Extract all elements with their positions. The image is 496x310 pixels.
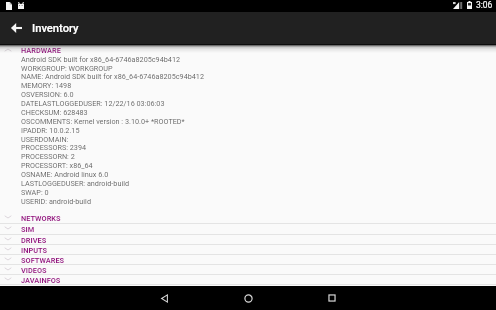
button[interactable]: Recents (290, 286, 374, 310)
button[interactable]: SOFTWARES (0, 255, 496, 265)
button[interactable]: VIDEOS (0, 265, 496, 275)
staticText: OSNAME: Android linux 6.0 (21, 170, 109, 178)
button[interactable]: SIM (0, 224, 496, 235)
button[interactable]: JAVAINFOS (0, 275, 496, 285)
button[interactable]: Back (122, 286, 206, 310)
staticText: PROCESSORS: 2394 (21, 143, 87, 151)
staticText: SIM (21, 225, 35, 234)
staticText: JAVAINFOS (21, 276, 61, 285)
button[interactable]: INPUTS (0, 245, 496, 255)
staticText: WORKGROUP: WORKGROUP (21, 64, 113, 72)
staticText: LASTLOGGEDUSER: android-build (21, 179, 129, 187)
staticText: Inventory (32, 22, 79, 35)
staticText: VIDEOS (21, 266, 47, 275)
staticText: PROCESSORT: x86_64 (21, 161, 93, 169)
staticText: NETWORKS (21, 214, 61, 223)
staticText: PROCESSORN: 2 (21, 152, 75, 160)
staticText: SOFTWARES (21, 256, 65, 265)
staticText: 3:06 (476, 0, 493, 10)
staticText: NAME: Android SDK built for x86_64-6746a… (21, 72, 204, 80)
staticText: OSCOMMENTS: Kernel version : 3.10.0+ *RO… (21, 117, 185, 125)
staticText: MEMORY: 1498 (21, 81, 72, 89)
staticText: SWAP: 0 (21, 188, 49, 196)
staticText: DRIVES (21, 236, 47, 245)
staticText: DATELASTLOGGEDUSER: 12/22/16 03:06:03 (21, 99, 165, 107)
staticText: USERID: android-build (21, 197, 91, 205)
button[interactable]: NETWORKS (0, 213, 496, 224)
staticText: IPADDR: 10.0.2.15 (21, 126, 80, 134)
staticText: CHECKSUM: 628483 (21, 108, 88, 116)
button[interactable]: DRIVES (0, 235, 496, 245)
button[interactable]: Home (206, 286, 290, 310)
button[interactable]: Back (0, 12, 32, 44)
staticText: OSVERSION: 6.0 (21, 90, 74, 98)
staticText: Android SDK built for x86_64-6746a8205c9… (21, 55, 181, 63)
staticText: INPUTS (21, 246, 48, 255)
staticText: USERDOMAIN: (21, 135, 69, 143)
staticText: HARDWARE (21, 46, 61, 55)
button[interactable]: HARDWARE (0, 45, 496, 55)
